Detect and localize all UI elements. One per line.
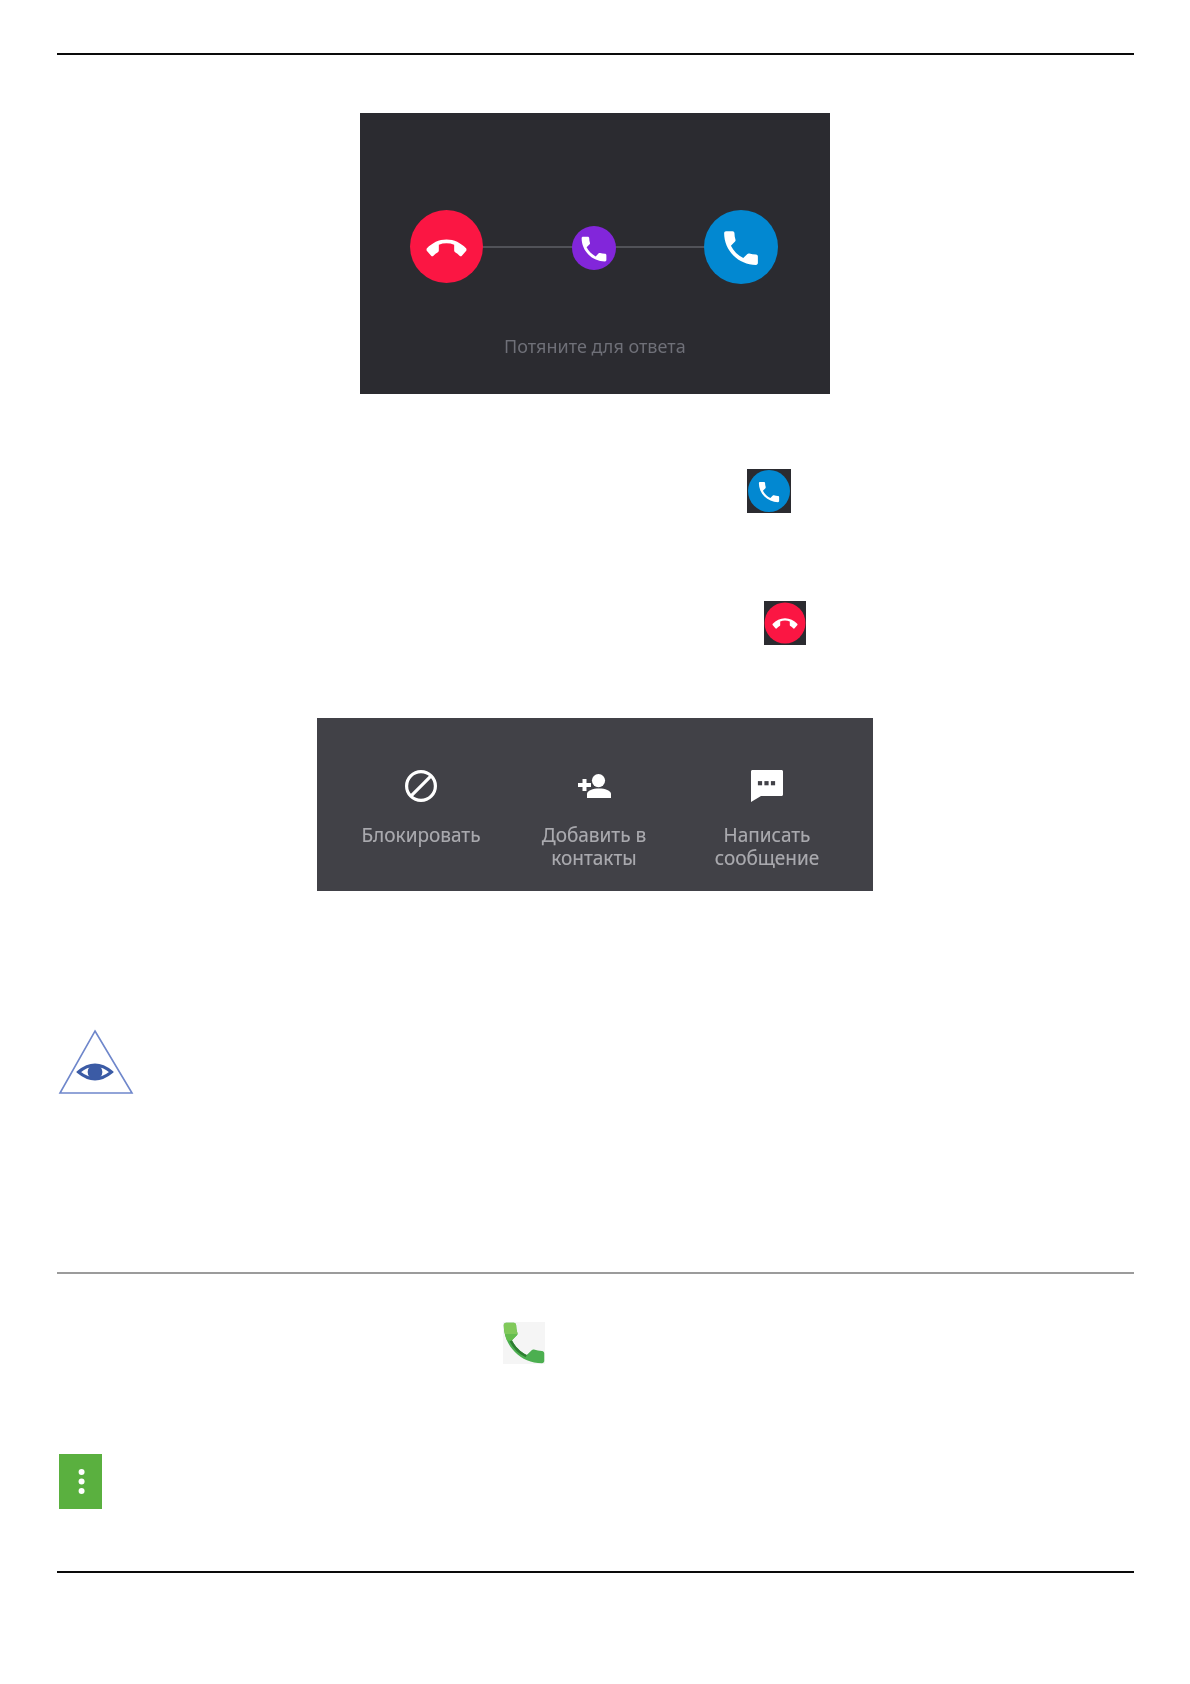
- button[interactable]: Add to contacts: [508, 718, 680, 891]
- button[interactable]: End call: [764, 601, 806, 645]
- staticText: Написать сообщение: [681, 822, 853, 871]
- staticText: Блокировать: [335, 822, 507, 848]
- button[interactable]: More options: [59, 1454, 102, 1509]
- button[interactable]: Write message: [681, 718, 853, 891]
- button[interactable]: Block: [335, 718, 507, 891]
- staticText: Добавить в контакты: [508, 822, 680, 871]
- other: All-seeing eye: [56, 1028, 136, 1098]
- button[interactable]: Answer call: [747, 469, 791, 513]
- button[interactable]: Phone: [503, 1322, 545, 1364]
- staticText: Потяните для ответа: [504, 334, 686, 359]
